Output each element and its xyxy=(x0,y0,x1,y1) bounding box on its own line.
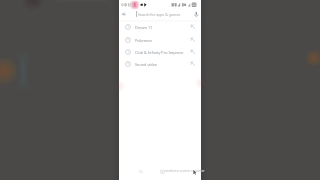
staticText: Sound video xyxy=(135,62,187,67)
button[interactable]: Voice search xyxy=(192,10,200,18)
staticText: Search for apps & games xyxy=(138,12,181,17)
staticText: Dream 11 xyxy=(135,25,187,30)
button[interactable]: Club & Infinity Pro Improve xyxy=(119,46,201,58)
button[interactable]: Sound video xyxy=(119,58,201,70)
button[interactable]: Pokemon xyxy=(119,34,201,46)
staticText: Pokemon xyxy=(135,38,187,43)
staticText: Club & Infinity Pro Improve xyxy=(135,50,187,55)
button[interactable]: Dream 11 xyxy=(119,21,201,33)
staticText: mobizen screen recorder xyxy=(165,168,205,173)
button[interactable]: Back xyxy=(120,10,128,18)
